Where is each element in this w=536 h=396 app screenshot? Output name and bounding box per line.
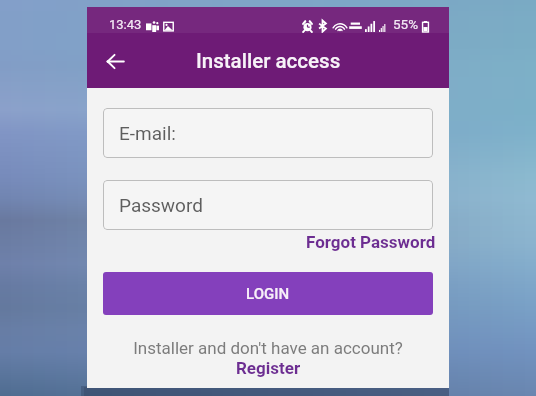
- staticText: Installer and don't have an account?: [103, 338, 433, 358]
- staticText: Register: [236, 358, 301, 378]
- button[interactable]: E-mail:: [103, 108, 433, 158]
- staticText: Forgot Password: [306, 232, 436, 252]
- button[interactable]: Forgot Password: [306, 232, 436, 252]
- staticText: E-mail:: [119, 122, 176, 144]
- staticText: 13:43: [109, 17, 142, 32]
- button[interactable]: Back: [98, 44, 132, 78]
- button[interactable]: Password: [103, 180, 433, 230]
- button[interactable]: LOGIN: [103, 272, 433, 315]
- staticText: Password: [119, 194, 203, 216]
- staticText: Installer access: [196, 49, 341, 73]
- staticText: LOGIN: [246, 285, 290, 303]
- button[interactable]: Register: [103, 358, 433, 378]
- staticText: 55%: [393, 16, 419, 32]
